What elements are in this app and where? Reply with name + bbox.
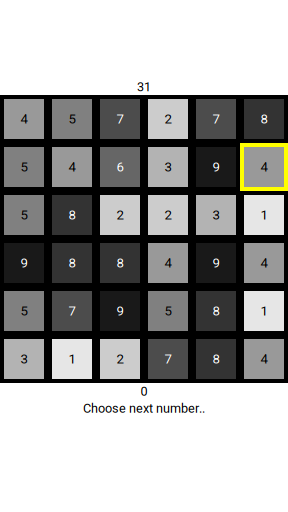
button[interactable]: 4 (240, 335, 288, 383)
staticText: 0 (140, 384, 147, 399)
button[interactable]: 5 (0, 287, 48, 335)
button[interactable]: 2 (144, 191, 192, 239)
staticText: 3 (20, 351, 27, 367)
staticText: 5 (20, 159, 27, 175)
staticText: 8 (68, 255, 75, 271)
button[interactable]: 2 (144, 95, 192, 143)
button[interactable]: 4 (48, 143, 96, 191)
staticText: 31 (137, 80, 151, 94)
staticText: 9 (116, 303, 123, 319)
staticText: 7 (116, 111, 123, 127)
button[interactable]: 2 (96, 335, 144, 383)
button[interactable]: 4 (0, 95, 48, 143)
button[interactable]: 3 (0, 335, 48, 383)
staticText: 9 (212, 255, 219, 271)
button[interactable]: 4 (240, 239, 288, 287)
button[interactable]: 8 (48, 191, 96, 239)
button[interactable]: 5 (0, 143, 48, 191)
button[interactable]: 2 (96, 191, 144, 239)
staticText: 8 (212, 303, 219, 319)
button[interactable]: 3 (192, 191, 240, 239)
staticText: 4 (164, 255, 171, 271)
staticText: 5 (164, 303, 171, 319)
button[interactable]: 7 (48, 287, 96, 335)
button[interactable]: 8 (48, 239, 96, 287)
staticText: 7 (68, 303, 75, 319)
button[interactable]: 1 (240, 191, 288, 239)
staticText: 3 (212, 207, 219, 223)
staticText: 1 (260, 303, 267, 319)
staticText: 3 (164, 159, 171, 175)
button[interactable]: 5 (0, 191, 48, 239)
staticText: 5 (20, 303, 27, 319)
button[interactable]: 9 (96, 287, 144, 335)
button[interactable]: 9 (0, 239, 48, 287)
staticText: 2 (164, 207, 171, 223)
staticText: 1 (260, 207, 267, 223)
staticText: 8 (260, 111, 267, 127)
staticText: Choose next number.. (83, 401, 205, 416)
button[interactable]: 3 (144, 143, 192, 191)
staticText: 4 (260, 255, 267, 271)
staticText: 5 (68, 111, 75, 127)
button[interactable]: 9 (192, 239, 240, 287)
button[interactable]: 8 (192, 335, 240, 383)
button[interactable]: 8 (192, 287, 240, 335)
button[interactable]: 8 (96, 239, 144, 287)
staticText: 2 (116, 207, 123, 223)
button[interactable]: 4 (240, 143, 288, 191)
staticText: 4 (20, 111, 27, 127)
button[interactable]: 1 (48, 335, 96, 383)
staticText: 7 (212, 111, 219, 127)
button[interactable]: 6 (96, 143, 144, 191)
staticText: 8 (212, 351, 219, 367)
staticText: 8 (68, 207, 75, 223)
button[interactable]: 7 (144, 335, 192, 383)
button[interactable]: 5 (144, 287, 192, 335)
staticText: 4 (260, 351, 267, 367)
staticText: 9 (20, 255, 27, 271)
staticText: 5 (20, 207, 27, 223)
staticText: 8 (116, 255, 123, 271)
button[interactable]: 5 (48, 95, 96, 143)
button[interactable]: 7 (192, 95, 240, 143)
staticText: 4 (68, 159, 75, 175)
staticText: 7 (164, 351, 171, 367)
button[interactable]: 9 (192, 143, 240, 191)
staticText: 4 (260, 159, 267, 175)
staticText: 9 (212, 159, 219, 175)
button[interactable]: 4 (144, 239, 192, 287)
button[interactable]: 1 (240, 287, 288, 335)
staticText: 2 (116, 351, 123, 367)
staticText: 1 (68, 351, 75, 367)
button[interactable]: 7 (96, 95, 144, 143)
staticText: 2 (164, 111, 171, 127)
button[interactable]: 8 (240, 95, 288, 143)
staticText: 6 (116, 159, 123, 175)
